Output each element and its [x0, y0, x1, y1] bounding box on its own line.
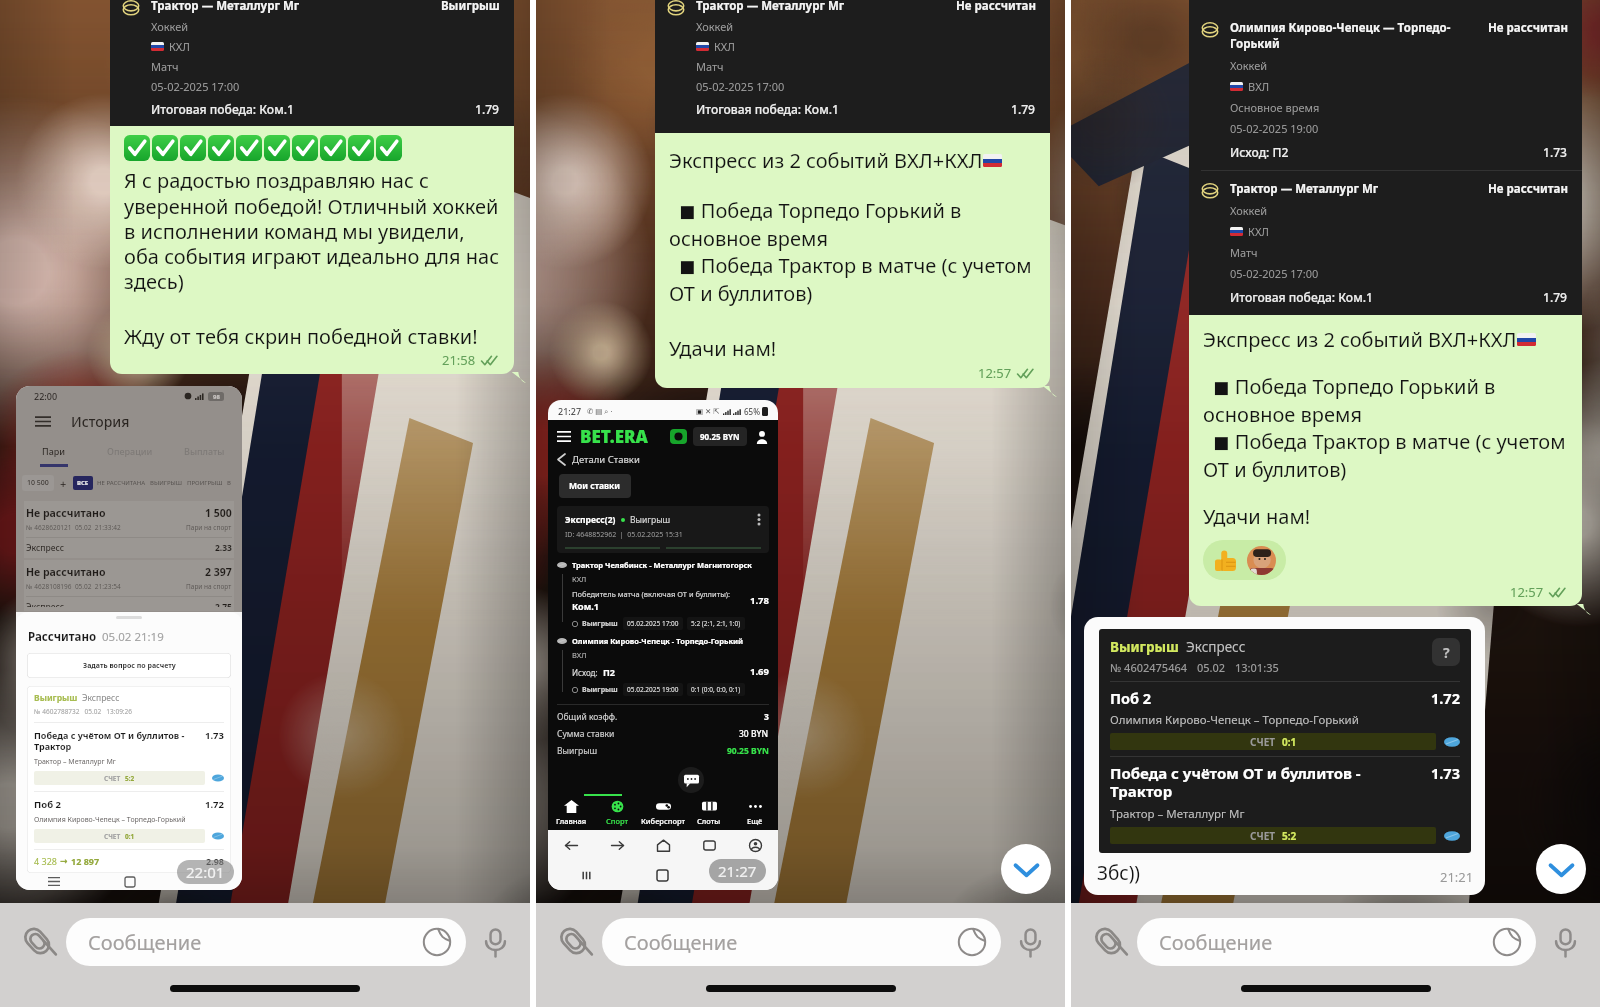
staticText: 0:1 (0:0, 0:0, 0:1): [691, 685, 741, 694]
staticText: BET.ERA: [580, 425, 648, 448]
staticText: Не рассчитано: [26, 565, 205, 579]
staticText: Основное время: [1230, 100, 1320, 115]
staticText: Выигрыш: [34, 692, 78, 704]
staticText: КХЛ: [572, 574, 587, 584]
staticText: Рассчитано: [28, 629, 97, 645]
staticText: П2: [603, 666, 616, 678]
button[interactable]: Support chat: [678, 767, 704, 793]
button[interactable]: Forward: [594, 830, 640, 860]
button[interactable]: Home: [640, 830, 686, 860]
staticText: Исход:: [572, 667, 598, 678]
staticText: 2 397: [205, 565, 232, 579]
button[interactable]: Record voice message: [472, 919, 518, 965]
button[interactable]: Screenshot of bet history: [16, 386, 242, 890]
staticText: ВХЛ: [1248, 79, 1270, 94]
staticText: Слоты: [697, 816, 721, 826]
button[interactable]: Back: [548, 830, 594, 860]
button[interactable]: Сообщение: [602, 918, 1001, 966]
staticText: Поб 2: [34, 798, 205, 811]
staticText: 3: [764, 711, 769, 723]
button[interactable]: Выигрыш: [1084, 617, 1485, 895]
button[interactable]: Help: [1432, 638, 1460, 666]
staticText: Победитель матча (включая ОТ и буллиты):: [572, 589, 731, 599]
button[interactable]: Операции: [92, 445, 167, 467]
staticText: Выигрыш: [441, 0, 500, 14]
button[interactable]: Profile: [732, 830, 778, 860]
staticText: ВЫИГРЫШ: [150, 479, 183, 487]
staticText: 05.02 21:19: [102, 629, 164, 645]
staticText: Детали Ставки: [572, 453, 640, 466]
staticText: 21:58: [442, 351, 476, 369]
button[interactable]: Трактор — Металлург Мг: [655, 0, 1050, 388]
staticText: Хоккей: [1230, 203, 1268, 218]
button[interactable]: Tabs: [686, 830, 732, 860]
staticText: Экспресс: [1186, 638, 1246, 656]
button[interactable]: Сообщение: [66, 918, 466, 966]
button[interactable]: Screenshot of bet details: [548, 400, 778, 890]
staticText: Задать вопрос по расчету: [83, 661, 176, 671]
button[interactable]: Трактор — Металлург Мг: [110, 0, 514, 374]
staticText: Ещё: [747, 816, 763, 826]
staticText: 5:2: [125, 774, 135, 783]
staticText: 98: [213, 393, 220, 401]
staticText: Итоговая победа: Ком.1: [151, 101, 475, 117]
staticText: Трактор – Металлург Мг: [1110, 806, 1245, 822]
staticText: 1 500: [205, 506, 232, 520]
staticText: 1.69: [750, 665, 769, 678]
button[interactable]: Attach file: [548, 916, 600, 968]
staticText: Не рассчитан: [1488, 181, 1568, 197]
staticText: 5:2: [1282, 829, 1297, 843]
staticText: НЕ РАССЧИТАНА: [97, 479, 146, 487]
staticText: 22:01: [186, 862, 225, 882]
button[interactable]: Выплаты: [167, 445, 242, 467]
staticText: ◼ Победа Торпедо Горький в основное врем…: [669, 197, 1039, 252]
button[interactable]: Киберспорт: [640, 796, 686, 830]
button[interactable]: Мои ставки: [569, 480, 621, 492]
staticText: Выигрыш: [630, 514, 671, 526]
staticText: ВСЕ: [77, 479, 89, 487]
staticText: КХЛ: [1248, 224, 1270, 239]
button[interactable]: Спорт: [594, 796, 640, 830]
staticText: История: [71, 412, 130, 431]
button[interactable]: Главная: [548, 796, 594, 830]
staticText: 90.25 BYN: [700, 431, 740, 442]
staticText: Удачи нам!: [669, 335, 777, 362]
staticText: 22:00: [34, 390, 58, 402]
button[interactable]: Ещё: [732, 796, 778, 830]
staticText: ВХЛ: [572, 650, 587, 660]
button[interactable]: Record voice message: [1007, 919, 1053, 965]
button[interactable]: Сообщение: [1137, 918, 1536, 966]
staticText: 21:27: [718, 861, 757, 881]
staticText: 05-02-2025 19:00: [1230, 121, 1319, 136]
staticText: СЧЕТ: [1250, 829, 1276, 843]
staticText: Матч: [1230, 245, 1258, 260]
button[interactable]: Scroll to bottom: [1536, 844, 1586, 894]
staticText: № 4602475464: [1110, 660, 1188, 675]
staticText: 05.02: [1197, 660, 1226, 675]
button[interactable]: Задать вопрос по расчету: [27, 653, 231, 678]
button[interactable]: Слоты: [686, 796, 732, 830]
button[interactable]: Пари: [16, 445, 92, 467]
staticText: 5:2 (2:1, 2:1, 1:0): [691, 619, 741, 628]
staticText: Пари: [42, 445, 66, 457]
button[interactable]: Record voice message: [1542, 919, 1588, 965]
button[interactable]: Scroll to bottom: [1001, 844, 1051, 894]
staticText: Итоговая победа: Ком.1: [696, 101, 1011, 117]
staticText: Операции: [107, 445, 153, 457]
staticText: 4 328: [34, 855, 57, 867]
staticText: Сообщение: [1159, 929, 1492, 956]
staticText: Выигрыш: [582, 685, 618, 695]
staticText: 1.72: [205, 798, 224, 811]
button[interactable]: Attach file: [1083, 916, 1135, 968]
button[interactable]: Thumbs up reaction: [1213, 540, 1276, 580]
staticText: 1.73: [1431, 763, 1460, 783]
button[interactable]: Олимпия Кирово-Чепецк — Торпедо-Горький: [1189, 0, 1582, 606]
staticText: Трактор – Металлург Мг: [34, 757, 116, 767]
staticText: ?: [1443, 643, 1450, 662]
staticText: Я с радостью поздравляю нас с уверенной …: [124, 167, 503, 295]
staticText: Победа с учётом ОТ и буллитов - Трактор: [34, 729, 198, 753]
staticText: ◼ Победа Торпедо Горький в основное врем…: [1203, 373, 1571, 428]
staticText: Экспресс(2): [565, 514, 616, 526]
button[interactable]: Attach file: [12, 916, 64, 968]
staticText: 05.02.2025 17:00: [627, 619, 679, 628]
